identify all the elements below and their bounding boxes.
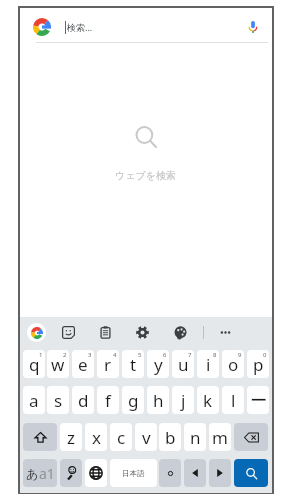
staticText: 2 [63,351,67,359]
staticText: 3 [88,351,92,359]
button[interactable]: c [110,423,132,451]
button[interactable]: Google [25,321,47,343]
staticText: r [104,353,112,376]
button[interactable]: p [247,350,269,378]
staticText: g [128,389,139,412]
button[interactable]: g [122,386,144,414]
staticText: 6 [163,351,167,359]
button[interactable]: x [85,423,107,451]
button[interactable]: Clipboard [94,321,116,343]
button[interactable]: i [197,350,219,378]
button[interactable]: r [97,350,119,378]
staticText: 4 [113,351,117,359]
staticText: a1 [39,464,55,483]
button[interactable]: n [184,423,206,451]
staticText: 1 [39,351,43,359]
button[interactable]: u [172,350,194,378]
button[interactable]: s [47,386,69,414]
staticText: a [29,389,39,412]
button[interactable]: Stickers [57,321,79,343]
button[interactable]: w [47,350,69,378]
staticText: 8 [213,351,217,359]
button[interactable]: Google [29,14,55,40]
button[interactable]: Move cursor right [209,459,231,487]
staticText: f [105,389,111,412]
button[interactable]: Emoji [60,459,82,487]
staticText: 0 [263,351,267,359]
staticText: 日本語 [122,469,145,478]
staticText: 9 [238,351,242,359]
staticText: w [51,353,65,376]
staticText: i [206,353,211,376]
button[interactable]: l [222,386,244,414]
staticText: z [67,426,75,449]
staticText: ウェブを検索 [115,169,176,182]
staticText: h [153,389,164,412]
button[interactable]: Change language [85,459,107,487]
button[interactable]: j [172,386,194,414]
button[interactable]: d [72,386,94,414]
staticText: 5 [138,351,142,359]
button[interactable]: Backspace [234,423,268,451]
button[interactable]: Move cursor left [184,459,206,487]
button[interactable]: More options [214,321,236,343]
staticText: あ [26,466,39,481]
staticText: 検索... [67,21,93,33]
button[interactable]: ー [247,386,269,414]
button[interactable]: Period [159,459,181,487]
button[interactable]: o [222,350,244,378]
staticText: j [181,389,186,412]
button[interactable]: 日本語 [110,459,157,487]
staticText: t [130,353,137,376]
button[interactable]: a [23,386,45,414]
staticText: u [178,353,189,376]
button[interactable]: t [122,350,144,378]
button[interactable]: v [135,423,157,451]
button[interactable]: z [60,423,82,451]
staticText: b [165,426,176,449]
staticText: n [190,426,201,449]
button[interactable]: f [97,386,119,414]
staticText: 7 [188,351,192,359]
staticText: k [203,389,213,412]
staticText: e [78,353,88,376]
staticText: c [117,426,126,449]
staticText: s [54,389,63,412]
button[interactable]: Shift [23,423,57,451]
button[interactable]: h [147,386,169,414]
button[interactable]: y [147,350,169,378]
staticText: q [29,353,40,376]
staticText: ー [250,390,267,411]
button[interactable]: Switch input mode [23,459,57,487]
staticText: m [212,426,228,449]
button[interactable]: b [159,423,181,451]
button[interactable]: Search [234,459,268,487]
staticText: v [142,426,151,449]
button[interactable]: Themes [169,321,191,343]
staticText: x [92,426,101,449]
button[interactable]: q [23,350,45,378]
button[interactable]: k [197,386,219,414]
staticText: p [253,353,264,376]
button[interactable]: Voice search [242,16,264,38]
staticText: l [231,389,236,412]
staticText: d [78,389,89,412]
staticText: y [154,353,163,376]
button[interactable]: m [209,423,231,451]
button[interactable]: e [72,350,94,378]
staticText: o [228,353,239,376]
button[interactable]: Settings [131,321,153,343]
